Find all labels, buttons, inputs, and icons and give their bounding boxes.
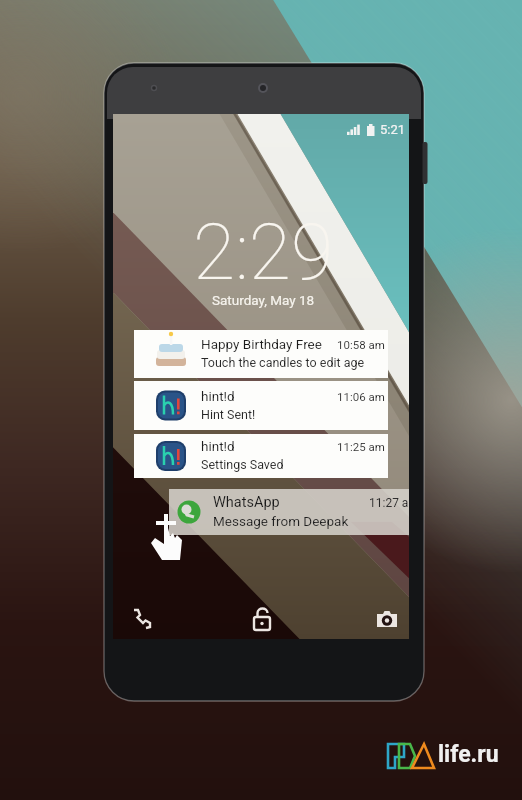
button[interactable]: Phone (115, 599, 167, 639)
button[interactable]: Camera (363, 599, 409, 639)
staticText: Settings Saved (201, 457, 284, 472)
staticText: 2:29 (193, 208, 334, 298)
staticText: 11:25 am (337, 440, 385, 453)
staticText: 11:06 am (337, 390, 385, 403)
staticText: hint!d (201, 388, 235, 404)
staticText: Saturday, May 18 (212, 292, 315, 308)
button[interactable]: Happy Birthday Free (134, 330, 388, 378)
staticText: hint!d (201, 438, 235, 454)
staticText: Happy Birthday Free (201, 336, 322, 352)
button[interactable]: WhatsApp (169, 489, 409, 535)
staticText: Touch the candles to edit age (201, 355, 365, 370)
staticText: Message from Deepak (213, 513, 349, 529)
button[interactable]: hint!d (134, 381, 388, 430)
button[interactable]: hint!d (134, 434, 388, 478)
staticText: 5:21 (380, 122, 406, 137)
staticText: Hint Sent! (201, 407, 256, 422)
staticText: 11:27 an (369, 496, 409, 510)
staticText: WhatsApp (213, 494, 280, 511)
staticText: 10:58 am (337, 338, 385, 351)
button[interactable]: Unlock (238, 599, 286, 639)
staticText: life.ru (438, 741, 499, 768)
